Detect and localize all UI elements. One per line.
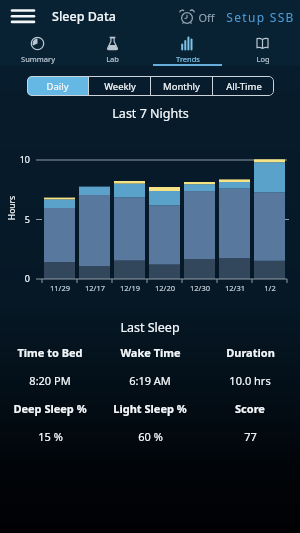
staticText: Last Sleep	[120, 319, 180, 336]
staticText: Hours	[5, 195, 17, 220]
button[interactable]: All-Time	[213, 76, 274, 96]
staticText: Weekly	[104, 80, 136, 93]
staticText: Monthly	[163, 80, 200, 93]
staticText: Deep Sleep %	[13, 401, 87, 416]
staticText: Score	[235, 401, 265, 416]
button[interactable]	[12, 9, 34, 24]
staticText: 60 %	[138, 429, 163, 444]
button[interactable]: Trends	[150, 33, 225, 66]
staticText: 10	[14, 153, 30, 165]
staticText: Daily	[46, 80, 69, 93]
staticText: All-Time	[226, 80, 262, 93]
staticText: Light Sleep %	[113, 401, 187, 416]
staticText: Sleep Data	[52, 8, 116, 25]
button[interactable]: Off	[179, 9, 215, 25]
staticText: Duration	[226, 345, 275, 360]
button[interactable]: Daily	[27, 76, 88, 96]
staticText: Summary	[21, 54, 55, 64]
button[interactable]: Monthly	[151, 76, 212, 96]
staticText: 10.0 hrs	[229, 373, 271, 388]
staticText: 0	[14, 272, 30, 284]
staticText: Time to Bed	[17, 345, 83, 360]
staticText: Log	[256, 54, 270, 64]
staticText: 15 %	[38, 429, 63, 444]
button[interactable]: Log	[225, 33, 300, 66]
staticText: 12/30	[190, 283, 210, 293]
staticText: 12/19	[120, 283, 140, 293]
staticText: Last 7 Nights	[112, 105, 189, 122]
button[interactable]: Weekly	[89, 76, 150, 96]
staticText: 12/20	[155, 283, 175, 293]
button[interactable]: Setup SSB	[226, 9, 296, 25]
button[interactable]: Summary	[0, 33, 75, 66]
staticText: Wake Time	[120, 345, 181, 360]
staticText: 11/29	[50, 283, 70, 293]
staticText: Off	[198, 10, 215, 25]
button[interactable]: Lab	[75, 33, 150, 66]
staticText: 6:19 AM	[129, 373, 171, 388]
staticText: 8:20 PM	[29, 373, 71, 388]
staticText: Lab	[106, 54, 119, 64]
staticText: 12/31	[225, 283, 245, 293]
staticText: 12/17	[85, 283, 105, 293]
staticText: Trends	[176, 54, 200, 64]
staticText: 1/2	[264, 283, 276, 293]
staticText: 5	[14, 213, 30, 225]
staticText: 77	[244, 429, 257, 444]
staticText: Setup SSB	[226, 9, 295, 25]
